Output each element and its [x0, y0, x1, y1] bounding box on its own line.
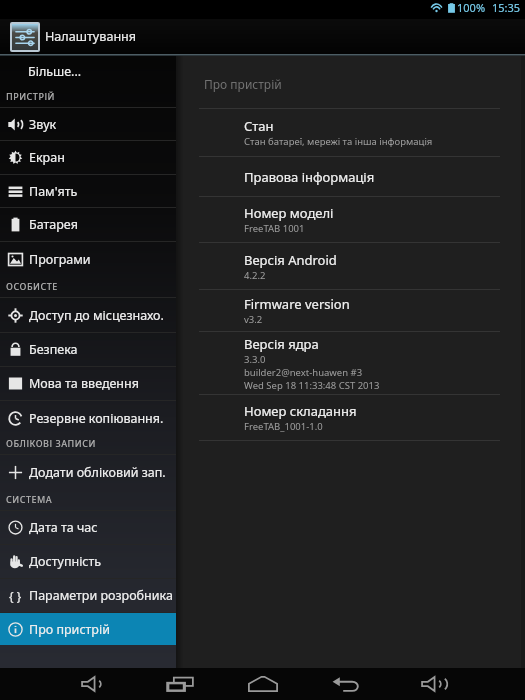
staticText: Firmware version: [244, 295, 350, 313]
staticText: FreeTAB 1001: [244, 222, 305, 235]
staticText: Дата та час: [29, 519, 98, 536]
staticText: ОБЛІКОВІ ЗАПИСИ: [6, 437, 96, 449]
staticText: FreeTAB_1001-1.0: [244, 420, 323, 433]
staticText: 100%: [457, 0, 486, 15]
staticText: 15:35: [492, 0, 521, 15]
staticText: Доступ до місцезнахо.: [29, 307, 164, 324]
staticText: Правова інформація: [244, 168, 375, 186]
button[interactable]: Доступність: [0, 545, 176, 578]
staticText: СИСТЕМА: [6, 493, 53, 505]
staticText: ПРИСТРІЙ: [6, 90, 55, 102]
button[interactable]: Резервне копіювання.: [0, 401, 176, 435]
staticText: Резервне копіювання.: [29, 410, 164, 427]
button[interactable]: Номер моделі: [176, 197, 525, 242]
staticText: Додати обліковий зап.: [29, 464, 166, 481]
staticText: Доступність: [29, 553, 102, 570]
staticText: Стан батареї, мережі та інша інформація: [244, 135, 433, 148]
button[interactable]: Home: [237, 668, 289, 700]
staticText: Налаштування: [45, 28, 137, 45]
staticText: Про пристрій: [29, 621, 110, 638]
staticText: Про пристрій: [204, 76, 282, 92]
button[interactable]: Батарея: [0, 208, 176, 241]
staticText: 3.3.0: [244, 353, 266, 366]
staticText: builder2@next-huawen #3: [244, 366, 363, 379]
staticText: Безпека: [29, 341, 78, 358]
button[interactable]: Мова та введення: [0, 367, 176, 400]
button[interactable]: Пам'ять: [0, 175, 176, 207]
staticText: Мова та введення: [29, 375, 139, 392]
staticText: Екран: [29, 149, 65, 166]
staticText: { }: [9, 588, 22, 603]
button[interactable]: Номер складання: [176, 395, 525, 440]
button[interactable]: Версія Android: [176, 243, 525, 289]
staticText: Програми: [29, 251, 91, 268]
button[interactable]: Volume down: [67, 668, 119, 700]
staticText: Більше...: [28, 63, 82, 80]
staticText: Версія Android: [244, 251, 337, 269]
button[interactable]: Екран: [0, 141, 176, 174]
staticText: Батарея: [29, 216, 78, 233]
button[interactable]: { }: [0, 579, 176, 612]
button[interactable]: Recent apps: [154, 668, 206, 700]
button[interactable]: Правова інформація: [176, 157, 525, 196]
button[interactable]: Back: [320, 668, 372, 700]
button[interactable]: Про пристрій: [0, 613, 176, 645]
staticText: Пам'ять: [29, 183, 78, 200]
staticText: 4.2.2: [244, 269, 266, 282]
button[interactable]: Firmware version: [176, 290, 525, 331]
button[interactable]: Дата та час: [0, 511, 176, 544]
button[interactable]: Додати обліковий зап.: [0, 455, 176, 489]
staticText: ОСОБИСТЕ: [6, 280, 58, 292]
staticText: Звук: [29, 116, 57, 133]
button[interactable]: Версія ядра: [176, 332, 525, 394]
staticText: Параметри розробника: [29, 587, 173, 604]
button[interactable]: Volume up: [407, 668, 459, 700]
staticText: Стан: [244, 117, 274, 135]
staticText: Номер складання: [244, 402, 357, 420]
staticText: Номер моделі: [244, 204, 334, 222]
staticText: Wed Sep 18 11:33:48 CST 2013: [244, 379, 380, 392]
button[interactable]: Програми: [0, 242, 176, 277]
button[interactable]: Звук: [0, 108, 176, 140]
staticText: Версія ядра: [244, 335, 319, 353]
button[interactable]: Стан: [176, 109, 525, 156]
button[interactable]: Більше...: [0, 56, 176, 87]
staticText: v3.2: [244, 313, 263, 326]
button[interactable]: Доступ до місцезнахо.: [0, 298, 176, 332]
button[interactable]: Безпека: [0, 333, 176, 366]
